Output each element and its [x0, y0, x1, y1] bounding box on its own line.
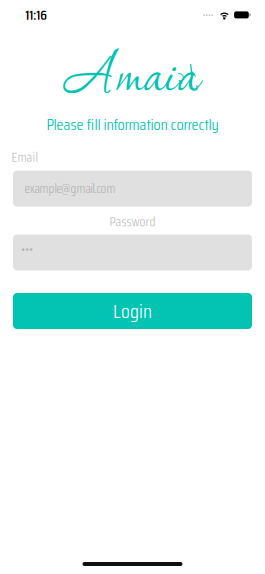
button[interactable]: ••• — [13, 234, 252, 270]
staticText: Password — [109, 211, 155, 232]
staticText: Please fill information correctly — [46, 112, 218, 137]
staticText: example@gmail.com — [24, 178, 115, 199]
staticText: ••• — [21, 239, 33, 260]
staticText: Amaia — [62, 36, 198, 120]
staticText: 11:16 — [25, 4, 47, 26]
staticText: Email — [11, 146, 38, 167]
button[interactable]: Login — [13, 293, 252, 329]
staticText: Login — [113, 295, 152, 327]
button[interactable]: example@gmail.com — [13, 171, 252, 207]
